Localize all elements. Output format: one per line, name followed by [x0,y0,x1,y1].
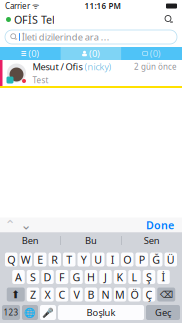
staticText: Test [32,75,48,85]
button[interactable]: F [56,270,68,284]
staticText: I [111,252,115,267]
button[interactable]: G [70,270,83,284]
button[interactable]: W [19,252,32,266]
button[interactable]: A [12,270,25,284]
button[interactable]: (0) [0,47,61,60]
button[interactable]: V [70,287,83,301]
button[interactable]: Previous field [2,218,18,232]
staticText: İ [161,270,165,284]
staticText: T [66,252,72,267]
staticText: Ö [130,287,138,302]
staticText: ⬆ [11,288,20,300]
staticText: H [87,270,95,284]
staticText: A [15,270,22,284]
button[interactable]: Dictate [40,305,56,320]
button[interactable]: Next field [18,218,34,232]
staticText: 🌐 [24,307,36,318]
button[interactable]: I [106,252,119,266]
staticText: Geç [155,306,171,319]
button[interactable]: Sen [122,232,182,248]
staticText: Y [81,252,87,267]
staticText: Ü [167,252,175,267]
button[interactable]: (0) [61,47,121,60]
staticText: Ş [146,270,152,284]
button[interactable]: Y [77,252,90,266]
button[interactable]: R [48,252,61,266]
staticText: 123 [3,307,18,318]
staticText: W [21,252,31,267]
staticText: O [123,252,131,267]
button[interactable]: N [99,287,112,301]
staticText: S [30,270,36,284]
button[interactable]: U [92,252,104,266]
staticText: (0) [28,47,39,60]
staticText: Ç [145,287,152,302]
button[interactable]: D [41,270,54,284]
button[interactable]: Search [162,12,176,26]
staticText: (0) [150,47,161,60]
staticText: U [94,252,102,267]
staticText: X [44,287,50,302]
button[interactable]: E [34,252,46,266]
staticText: E [37,252,43,267]
button[interactable]: M [114,287,126,301]
button[interactable]: Bu [61,232,121,248]
button[interactable]: Q [5,252,17,266]
staticText: ⌄ [20,217,31,232]
button[interactable]: Z [27,287,39,301]
staticText: J [104,270,107,284]
button[interactable]: Ş [143,270,155,284]
staticText: Ğ [152,252,160,267]
staticText: 🎤 [42,307,54,318]
button[interactable]: X [41,287,54,301]
button[interactable]: İ [157,270,170,284]
staticText: G [72,270,80,284]
button[interactable]: H [85,270,97,284]
button[interactable]: Mesut / Ofis [0,60,182,86]
button[interactable]: Ben [0,232,60,248]
staticText: Ben [22,234,39,247]
staticText: 11:16 PM [84,1,120,11]
staticText: B [87,287,94,302]
staticText: Mesut / Ofis [32,60,84,73]
staticText: K [116,270,123,284]
staticText: İleti dizilerinde ara ... [22,31,110,43]
staticText: L [131,270,137,284]
button[interactable]: L [128,270,141,284]
staticText: ᯤ [30,1,39,11]
staticText: N [101,287,109,302]
button[interactable]: Done [140,218,180,232]
button[interactable]: (0) [121,47,182,60]
staticText: ⌃ [4,217,15,232]
button[interactable]: Ü [164,252,177,266]
staticText: OFİS Tel [11,12,55,27]
button[interactable]: K [114,270,126,284]
button[interactable]: Ğ [150,252,162,266]
staticText: Z [30,287,36,302]
button[interactable]: J [99,270,112,284]
button[interactable]: T [63,252,75,266]
button[interactable]: Geç [146,305,180,320]
button[interactable]: Ç [143,287,155,301]
button[interactable]: O [121,252,133,266]
button[interactable]: 123 [2,305,20,320]
button[interactable]: C [56,287,68,301]
button[interactable]: Boşluk [58,305,144,320]
button[interactable]: P [135,252,148,266]
button[interactable]: Ö [128,287,141,301]
staticText: Done [146,218,174,232]
button[interactable]: İleti dizilerinde ara ... [0,27,182,47]
staticText: R [51,252,58,267]
staticText: (nicky) [84,60,111,73]
staticText: P [139,252,145,267]
button[interactable]: Shift [7,287,25,301]
staticText: V [73,287,79,302]
button[interactable]: S [27,270,39,284]
staticText: F [59,270,65,284]
button[interactable]: Delete [157,287,175,301]
staticText: 2 gün önce [134,61,177,72]
button[interactable]: B [85,287,97,301]
button[interactable]: Change keyboard [22,305,38,320]
staticText: (0) [89,47,100,60]
staticText: Carrier [5,1,30,11]
